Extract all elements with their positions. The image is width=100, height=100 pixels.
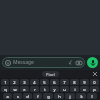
button[interactable]: Emoji bbox=[2, 57, 85, 68]
button[interactable]: q bbox=[1, 86, 9, 92]
staticText: p bbox=[93, 87, 96, 92]
staticText: l bbox=[91, 94, 93, 99]
staticText: j bbox=[69, 94, 71, 99]
button[interactable]: w bbox=[10, 86, 19, 92]
button[interactable]: 6 bbox=[50, 79, 59, 85]
staticText: r bbox=[34, 87, 36, 92]
button[interactable]: 7 bbox=[60, 79, 69, 85]
staticText: 4 bbox=[33, 80, 36, 85]
button[interactable]: 9 bbox=[80, 79, 89, 85]
button[interactable]: Record voice message bbox=[87, 57, 98, 68]
button[interactable]: 5 bbox=[40, 79, 49, 85]
button[interactable]: a bbox=[3, 93, 12, 99]
button[interactable]: p bbox=[90, 86, 99, 92]
button[interactable]: Attach bbox=[67, 59, 74, 66]
staticText: t bbox=[44, 87, 46, 92]
staticText: h bbox=[58, 94, 61, 99]
button[interactable]: l bbox=[87, 93, 97, 99]
button[interactable]: Camera bbox=[75, 59, 82, 66]
button[interactable]: Pixel bbox=[42, 71, 59, 77]
button[interactable]: d bbox=[23, 93, 32, 99]
button[interactable]: e bbox=[20, 86, 29, 92]
button[interactable]: u bbox=[60, 86, 69, 92]
staticText: 6 bbox=[53, 80, 56, 85]
staticText: 9 bbox=[83, 80, 86, 85]
staticText: y bbox=[53, 87, 56, 92]
staticText: q bbox=[4, 87, 7, 92]
button[interactable]: s bbox=[13, 93, 22, 99]
staticText: 0 bbox=[93, 80, 96, 85]
staticText: a bbox=[6, 94, 9, 99]
button[interactable]: 3 bbox=[20, 79, 29, 85]
staticText: k bbox=[80, 94, 83, 99]
button[interactable]: Close suggestions bbox=[92, 71, 98, 77]
button[interactable]: Emoji bbox=[4, 59, 11, 66]
button[interactable]: 4 bbox=[30, 79, 39, 85]
staticText: w bbox=[13, 87, 17, 92]
button[interactable]: y bbox=[50, 86, 59, 92]
staticText: i bbox=[74, 87, 76, 92]
button[interactable]: f bbox=[33, 93, 42, 99]
staticText: o bbox=[83, 87, 86, 92]
staticText: 5 bbox=[43, 80, 46, 85]
button[interactable]: 1 bbox=[1, 79, 9, 85]
staticText: 2 bbox=[13, 80, 16, 85]
button[interactable]: k bbox=[76, 93, 86, 99]
staticText: d bbox=[26, 94, 29, 99]
button[interactable]: j bbox=[65, 93, 75, 99]
staticText: s bbox=[17, 94, 19, 99]
staticText: e bbox=[23, 87, 26, 92]
button[interactable]: 0 bbox=[90, 79, 99, 85]
button[interactable]: i bbox=[70, 86, 79, 92]
button[interactable]: 8 bbox=[70, 79, 79, 85]
button[interactable]: g bbox=[43, 93, 53, 99]
staticText: 8 bbox=[73, 80, 76, 85]
staticText: Pixel bbox=[46, 72, 55, 77]
button[interactable]: h bbox=[54, 93, 64, 99]
staticText: 3 bbox=[23, 80, 26, 85]
staticText: g bbox=[47, 94, 50, 99]
button[interactable]: o bbox=[80, 86, 89, 92]
button[interactable]: r bbox=[30, 86, 39, 92]
button[interactable]: t bbox=[40, 86, 49, 92]
staticText: 7 bbox=[63, 80, 66, 85]
staticText: u bbox=[63, 87, 66, 92]
staticText: f bbox=[37, 94, 39, 99]
button[interactable]: 2 bbox=[10, 79, 19, 85]
staticText: Message bbox=[13, 59, 34, 66]
staticText: 1 bbox=[4, 80, 7, 85]
